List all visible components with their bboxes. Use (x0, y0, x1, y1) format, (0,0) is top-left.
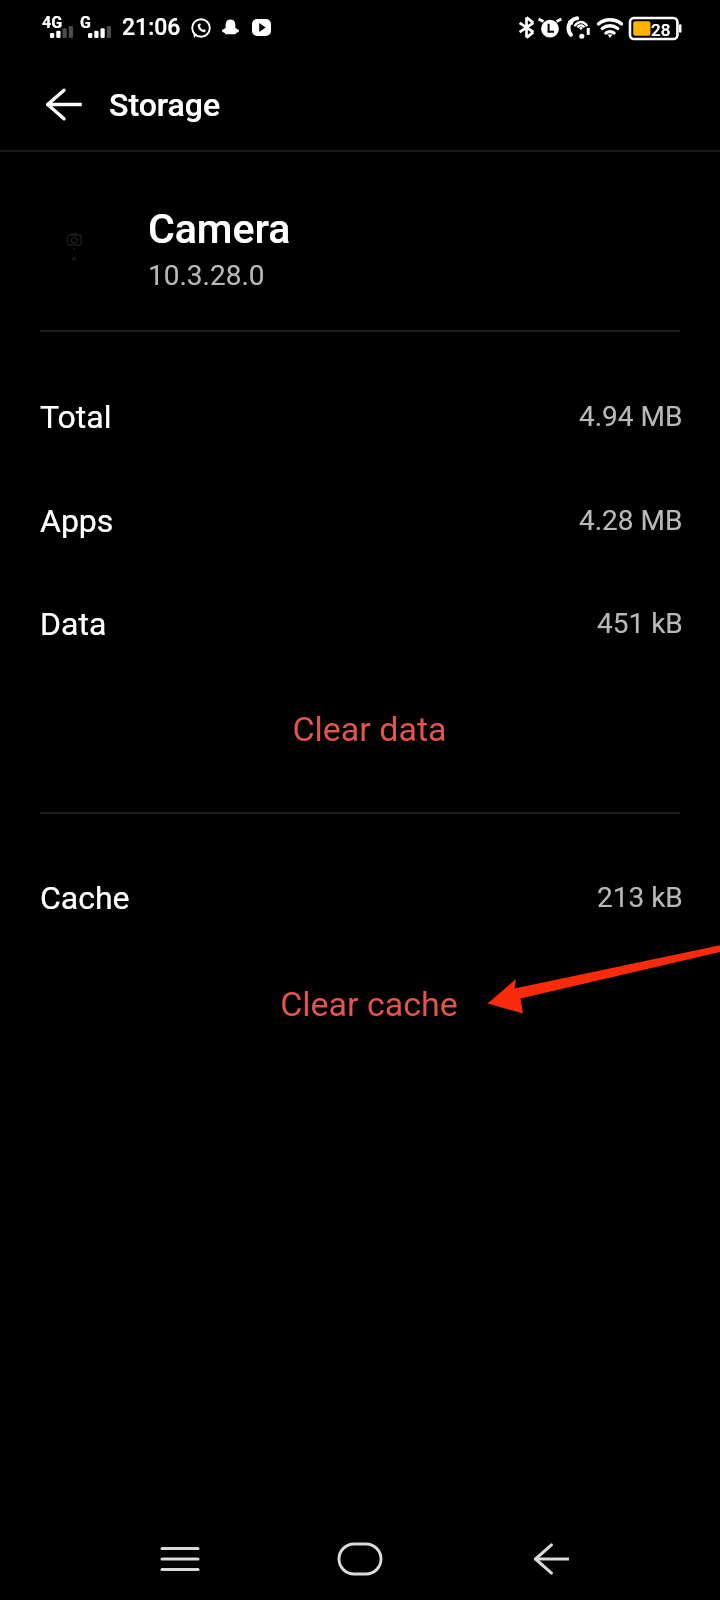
button[interactable]: Cache (0, 846, 720, 950)
staticText: Camera (148, 205, 291, 253)
staticText: 21:06 (122, 14, 181, 41)
staticText: 4.28 MB (579, 504, 683, 537)
staticText: Clear cache (280, 984, 458, 1024)
button[interactable]: Back (491, 1518, 611, 1600)
button[interactable]: Apps (0, 469, 720, 573)
button[interactable]: Recent apps (120, 1518, 240, 1600)
button[interactable]: Clear cache (0, 951, 720, 1047)
button[interactable]: Data (0, 572, 720, 676)
staticText: 4G (42, 13, 63, 32)
button[interactable]: Total (0, 365, 720, 469)
button[interactable]: Clear data (0, 676, 720, 772)
staticText: Data (40, 605, 107, 643)
button[interactable]: Back (36, 76, 92, 132)
staticText: 451 kB (597, 607, 683, 640)
staticText: 213 kB (597, 881, 683, 914)
staticText: Total (40, 398, 112, 436)
staticText: 10.3.28.0 (148, 259, 265, 292)
staticText: 4.94 MB (579, 400, 683, 433)
staticText: Apps (40, 502, 114, 540)
staticText: Storage (109, 86, 221, 124)
staticText: Clear data (292, 709, 447, 749)
staticText: Cache (40, 879, 130, 917)
staticText: 28 (651, 20, 671, 40)
button[interactable]: Home (300, 1518, 420, 1600)
staticText: G (80, 13, 91, 32)
